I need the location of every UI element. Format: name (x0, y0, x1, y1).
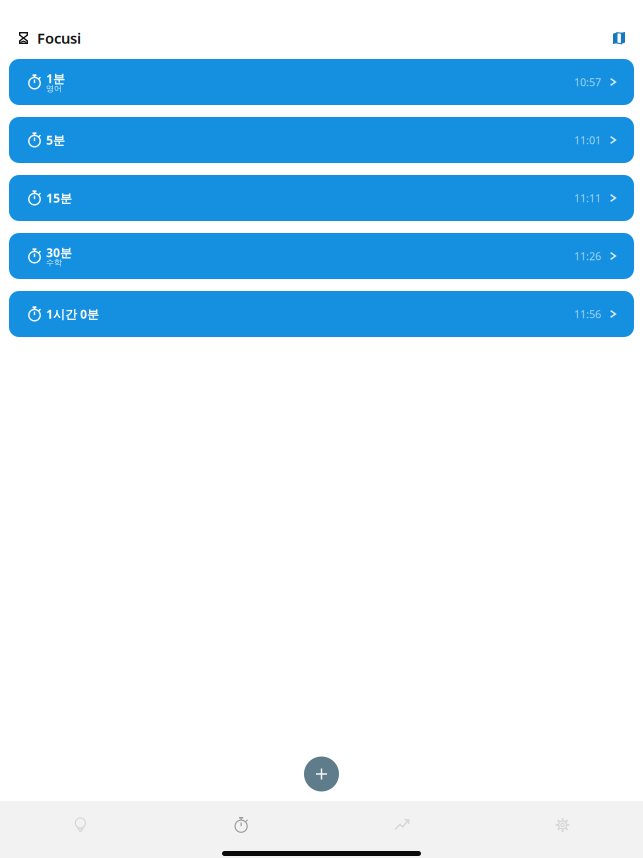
staticText: 11:01 (574, 133, 601, 147)
button[interactable]: 1분 (9, 59, 634, 105)
button[interactable]: 30분 (9, 233, 634, 279)
staticText: 수학 (46, 258, 62, 267)
button[interactable]: Map (613, 26, 625, 50)
staticText: 10:57 (574, 75, 601, 89)
staticText: 1시간 0분 (46, 306, 99, 322)
staticText: 11:11 (574, 191, 601, 205)
staticText: 11:26 (574, 249, 601, 263)
button[interactable]: 15분 (9, 175, 634, 221)
button[interactable]: Focusi (19, 28, 81, 48)
staticText: 영어 (46, 84, 62, 93)
staticText: 1분 (46, 71, 65, 86)
button[interactable]: Add timer (299, 752, 343, 796)
staticText: 11:56 (574, 307, 601, 321)
staticText: 30분 (46, 245, 72, 260)
button[interactable]: 5분 (9, 117, 634, 163)
staticText: Focusi (37, 28, 81, 48)
staticText: 5분 (46, 132, 65, 148)
staticText: 15분 (46, 190, 72, 206)
button[interactable]: 1시간 0분 (9, 291, 634, 337)
button[interactable]: Timers (161, 801, 322, 849)
